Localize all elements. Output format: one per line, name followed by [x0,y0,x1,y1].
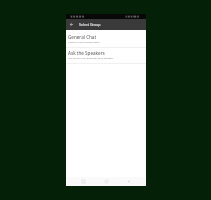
button[interactable]: Back [124,177,133,186]
staticText: You can ask your questions from speakers [68,57,114,60]
staticText: Select Group [79,22,101,27]
button[interactable]: Recents [79,177,88,186]
button[interactable]: Ask the Speakers [66,48,146,63]
staticText: A place to get to know others [68,41,100,44]
button[interactable]: Back [66,19,79,30]
staticText: General Chat [68,34,97,40]
button[interactable]: General Chat [66,32,146,47]
staticText: Ask the Speakers [68,50,105,56]
button[interactable]: Home [102,177,111,186]
